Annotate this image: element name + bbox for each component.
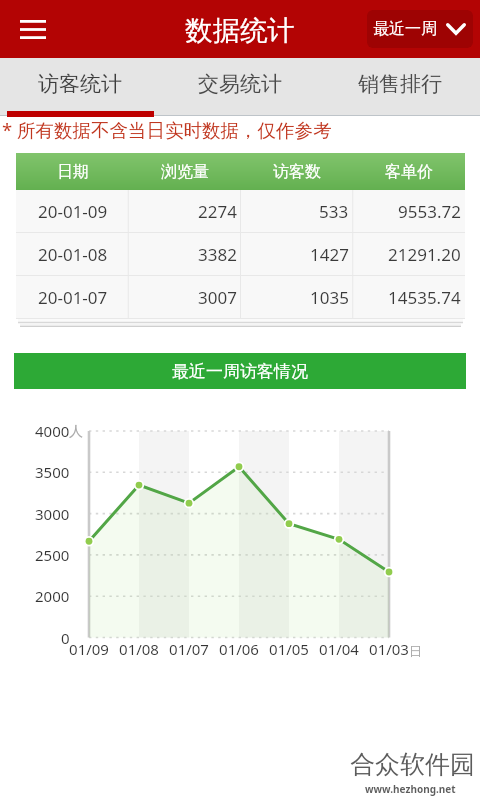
staticText: 9553.72 bbox=[398, 200, 461, 223]
staticText: 2500 bbox=[35, 545, 70, 565]
staticText: 最近一周访客情况 bbox=[172, 361, 308, 382]
staticText: www.hezhong.net bbox=[365, 782, 456, 796]
staticText: 1427 bbox=[310, 243, 349, 266]
staticText: 销售排行 bbox=[358, 71, 442, 97]
button[interactable]: 最近一周 bbox=[367, 10, 473, 48]
staticText: 20-01-07 bbox=[38, 286, 108, 309]
staticText: 2274 bbox=[198, 200, 237, 223]
staticText: 01/09 bbox=[69, 639, 109, 659]
staticText: 01/07 bbox=[169, 639, 209, 659]
staticText: 01/06 bbox=[219, 639, 259, 659]
staticText: 533 bbox=[319, 200, 349, 223]
staticText: 01/08 bbox=[119, 639, 159, 659]
staticText: 1035 bbox=[310, 286, 349, 309]
staticText: 01/04 bbox=[319, 639, 359, 659]
staticText: 21291.20 bbox=[388, 243, 461, 266]
staticText: 最近一周 bbox=[373, 19, 437, 39]
staticText: 日期 bbox=[57, 162, 89, 182]
staticText: 3500 bbox=[35, 462, 70, 482]
staticText: 访客数 bbox=[273, 162, 321, 182]
staticText: 14535.74 bbox=[388, 286, 461, 309]
button[interactable]: Menu bbox=[9, 5, 57, 53]
staticText: 人 bbox=[69, 423, 83, 441]
staticText: 3382 bbox=[198, 243, 237, 266]
button[interactable]: 最近一周访客情况 bbox=[14, 353, 466, 389]
staticText: 交易统计 bbox=[198, 71, 282, 97]
staticText: * 所有数据不含当日实时数据，仅作参考 bbox=[2, 117, 332, 142]
button[interactable]: 销售排行 bbox=[320, 58, 480, 116]
button[interactable]: 访客统计 bbox=[0, 58, 160, 116]
staticText: 日 bbox=[409, 643, 422, 659]
staticText: 01/05 bbox=[269, 639, 309, 659]
staticText: 20-01-08 bbox=[38, 243, 108, 266]
staticText: 3000 bbox=[35, 504, 70, 524]
staticText: 浏览量 bbox=[161, 162, 209, 182]
staticText: 4000 bbox=[35, 421, 70, 441]
staticText: 01/03 bbox=[369, 639, 409, 659]
staticText: 客单价 bbox=[385, 162, 433, 182]
staticText: 3007 bbox=[198, 286, 237, 309]
staticText: 访客统计 bbox=[38, 71, 122, 97]
staticText: 数据统计 bbox=[185, 14, 295, 49]
staticText: 2000 bbox=[35, 586, 70, 606]
staticText: 合众软件园 bbox=[350, 749, 475, 780]
staticText: 0 bbox=[61, 628, 70, 648]
button[interactable]: 交易统计 bbox=[160, 58, 320, 116]
staticText: 20-01-09 bbox=[38, 200, 108, 223]
